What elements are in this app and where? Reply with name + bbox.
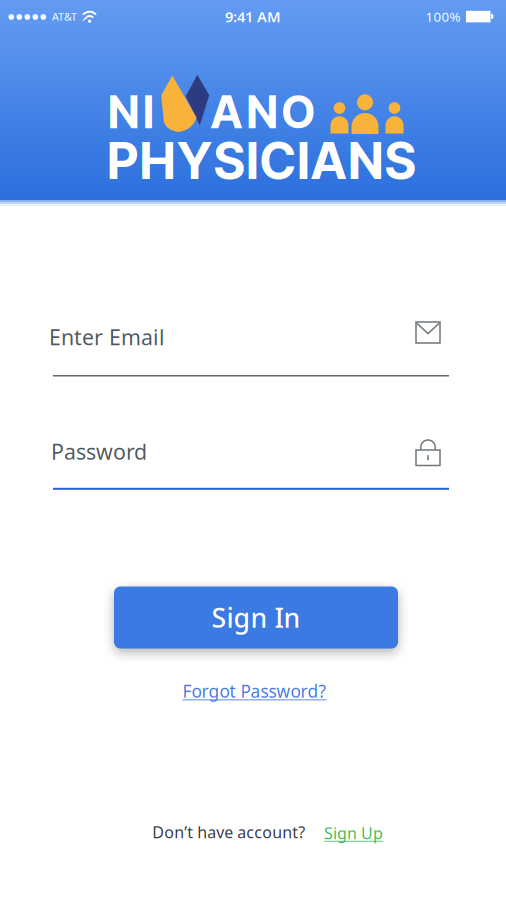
staticText: NI [108, 85, 154, 139]
staticText: PHYSICIANS [107, 130, 416, 191]
button[interactable]: Sign Up [324, 822, 383, 844]
button[interactable]: Forgot Password? [182, 679, 326, 702]
staticText: 9:41 AM [225, 7, 281, 26]
staticText: 100% [425, 8, 460, 25]
staticText: ANO [210, 85, 314, 139]
staticText: Sign Up [324, 822, 383, 844]
staticText: AT&T [52, 9, 77, 24]
staticText: Forgot Password? [182, 679, 326, 702]
button[interactable]: Password [53, 437, 449, 491]
button[interactable]: Enter Email [53, 322, 449, 378]
staticText: Password [51, 437, 147, 466]
button[interactable]: Sign In [114, 586, 398, 648]
staticText: Sign In [211, 600, 300, 635]
staticText: Don’t have account? [152, 821, 305, 843]
staticText: Enter Email [49, 323, 165, 351]
